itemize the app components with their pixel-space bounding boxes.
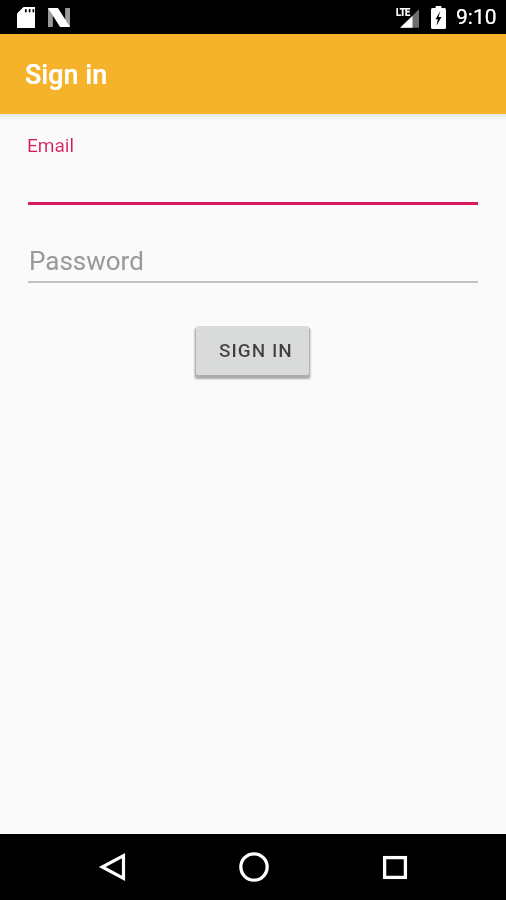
button[interactable]: Recent apps [348,834,441,900]
staticText: 9:10 [456,5,497,30]
staticText: Email [27,134,75,156]
button[interactable]: SIGN IN [196,326,309,375]
staticText: Password [29,246,144,276]
staticText: Sign in [25,59,108,91]
staticText: SIGN IN [219,339,293,361]
staticText: LTE [396,6,410,19]
button[interactable]: Back [67,834,160,900]
button[interactable]: Home [207,834,300,900]
